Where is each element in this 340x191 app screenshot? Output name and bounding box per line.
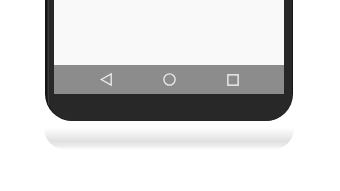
button[interactable]: Back bbox=[92, 65, 120, 94]
button[interactable]: Home bbox=[155, 65, 183, 94]
button[interactable]: Recent apps bbox=[219, 65, 247, 94]
